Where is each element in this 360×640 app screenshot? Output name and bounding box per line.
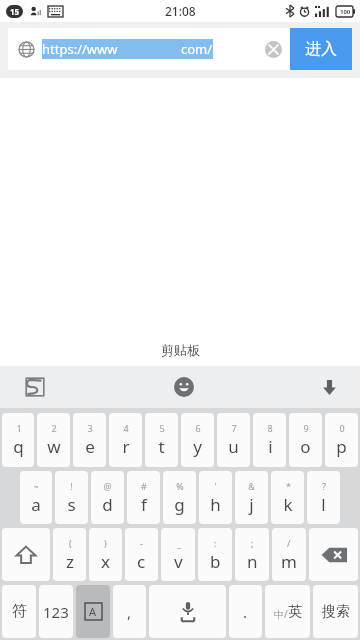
staticText: * <box>286 480 291 492</box>
button[interactable]: 搜索 <box>313 585 358 638</box>
staticText: ? <box>322 480 326 492</box>
staticText: ) <box>104 537 107 549</box>
button[interactable]: - <box>125 528 158 581</box>
staticText: 0 <box>339 422 345 434</box>
staticText: w <box>47 435 61 458</box>
staticText: u <box>228 435 239 458</box>
button[interactable]: Shift <box>2 528 50 581</box>
staticText: x <box>101 550 110 573</box>
button[interactable]: . <box>229 585 262 638</box>
button[interactable]: ; <box>235 528 269 581</box>
staticText: j <box>249 493 254 516</box>
button[interactable]: 3 <box>73 413 106 467</box>
staticText: ~ <box>33 480 39 492</box>
staticText: 123 <box>43 602 69 622</box>
button[interactable]: ! <box>55 471 88 524</box>
button[interactable]: % <box>163 471 196 524</box>
staticText: t <box>158 435 165 458</box>
button[interactable]: Sogou input method <box>0 366 70 408</box>
button[interactable]: 123 <box>39 585 73 638</box>
staticText: z <box>66 550 74 573</box>
button[interactable]: Delete <box>309 528 358 581</box>
button[interactable]: * <box>271 471 304 524</box>
button[interactable]: Clear <box>256 32 290 66</box>
staticText: : <box>214 537 217 549</box>
button[interactable]: 剪贴板 <box>0 334 360 366</box>
staticText: s <box>67 493 76 516</box>
staticText: ; <box>251 537 254 549</box>
staticText: & <box>248 480 255 492</box>
staticText: f <box>141 493 147 516</box>
staticText: 5 <box>159 422 165 434</box>
button[interactable]: 0 <box>325 413 358 467</box>
staticText: k <box>283 493 293 516</box>
staticText: 搜索 <box>322 603 350 621</box>
button[interactable]: & <box>235 471 268 524</box>
staticText: 4 <box>123 422 129 434</box>
staticText: 7 <box>231 422 237 434</box>
staticText: ! <box>70 480 73 492</box>
button[interactable]: _ <box>161 528 195 581</box>
button[interactable]: @ <box>91 471 124 524</box>
staticText: 21:08 <box>165 3 196 19</box>
staticText: 15 <box>10 6 20 17</box>
staticText: v <box>174 550 183 573</box>
button[interactable]: ) <box>89 528 122 581</box>
staticText: y <box>193 435 202 458</box>
staticText: 6 <box>195 422 201 434</box>
button[interactable]: 2 <box>37 413 70 467</box>
staticText: , <box>127 602 132 622</box>
staticText: 剪贴板 <box>161 342 200 358</box>
staticText: 中 <box>274 608 284 621</box>
button[interactable]: Hide keyboard <box>298 366 360 408</box>
staticText: 8 <box>267 422 273 434</box>
button[interactable]: / <box>272 528 306 581</box>
staticText: ( <box>69 537 72 549</box>
staticText: o <box>300 435 311 458</box>
button[interactable]: Input language A <box>76 585 110 638</box>
button[interactable]: ' <box>199 471 232 524</box>
staticText: @ <box>103 480 112 492</box>
button[interactable]: ? <box>307 471 340 524</box>
staticText: 1 <box>16 422 22 434</box>
staticText: b <box>210 550 221 573</box>
button[interactable]: 符 <box>2 585 36 638</box>
staticText: e <box>85 435 95 458</box>
staticText: / <box>284 607 288 621</box>
staticText: l <box>321 493 326 516</box>
staticText: _ <box>177 537 181 549</box>
button[interactable]: ( <box>53 528 86 581</box>
button[interactable]: 6 <box>181 413 214 467</box>
staticText: q <box>13 435 24 458</box>
button[interactable]: 9 <box>289 413 322 467</box>
staticText: 3 <box>87 422 93 434</box>
button[interactable]: 中 <box>265 585 310 638</box>
staticText: 符 <box>12 602 27 621</box>
staticText: h <box>210 493 221 516</box>
staticText: 9 <box>303 422 309 434</box>
staticText: 英 <box>288 603 302 621</box>
button[interactable]: 8 <box>253 413 286 467</box>
button[interactable]: 5 <box>145 413 178 467</box>
button[interactable]: , <box>113 585 146 638</box>
staticText: i <box>268 435 273 458</box>
staticText: / <box>287 537 291 549</box>
staticText: https://www <box>42 40 118 58</box>
staticText: - <box>140 537 143 549</box>
button[interactable]: ~ <box>20 471 52 524</box>
button[interactable]: 7 <box>217 413 250 467</box>
button[interactable]: 4 <box>109 413 142 467</box>
staticText: # <box>141 480 147 492</box>
staticText: . <box>243 602 248 622</box>
button[interactable]: https://www <box>8 28 290 70</box>
staticText: a <box>31 493 41 516</box>
staticText: c <box>137 550 146 573</box>
button[interactable]: 进入 <box>290 28 352 70</box>
staticText: p <box>336 435 347 458</box>
button[interactable]: 1 <box>2 413 34 467</box>
button[interactable]: : <box>198 528 232 581</box>
staticText: ' <box>214 480 217 492</box>
button[interactable]: Space and voice input <box>149 585 226 638</box>
button[interactable]: # <box>127 471 160 524</box>
button[interactable]: Emoji <box>154 366 214 408</box>
